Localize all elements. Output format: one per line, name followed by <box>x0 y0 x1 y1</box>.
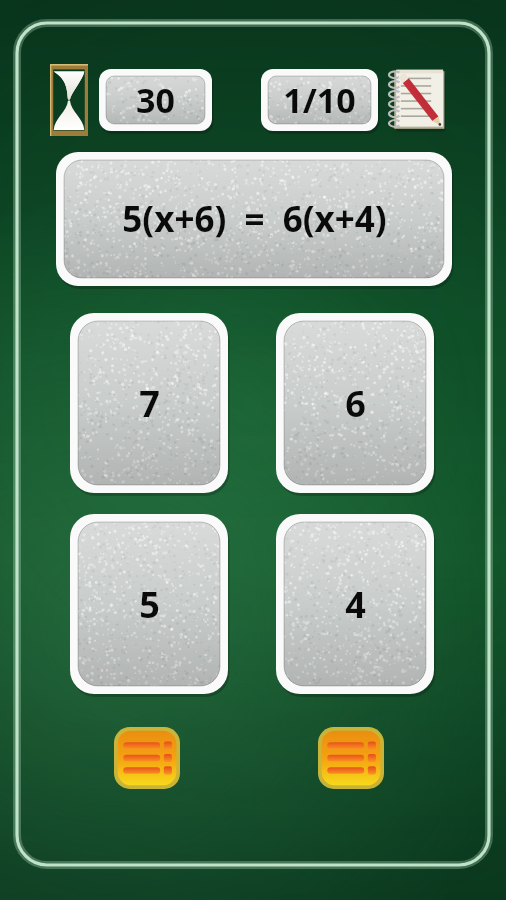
button[interactable]: 5 <box>70 514 228 694</box>
button[interactable]: 5(x+6) = 6(x+4) <box>56 152 452 286</box>
button[interactable]: 1/10 <box>261 69 378 131</box>
button[interactable]: Show hint <box>318 727 384 789</box>
button[interactable]: 6 <box>276 313 434 493</box>
staticText: 1/10 <box>283 77 356 123</box>
staticText: 7 <box>139 379 160 428</box>
button[interactable]: Timer <box>50 64 88 136</box>
staticText: 4 <box>345 580 366 629</box>
button[interactable]: 4 <box>276 514 434 694</box>
button[interactable]: Notes <box>385 64 451 136</box>
staticText: 30 <box>136 77 175 123</box>
staticText: 5(x+6) = 6(x+4) <box>122 195 387 243</box>
staticText: 6 <box>345 379 366 428</box>
button[interactable]: 7 <box>70 313 228 493</box>
staticText: 5 <box>139 580 160 629</box>
button[interactable]: 30 <box>99 69 212 131</box>
button[interactable]: Show steps <box>114 727 180 789</box>
